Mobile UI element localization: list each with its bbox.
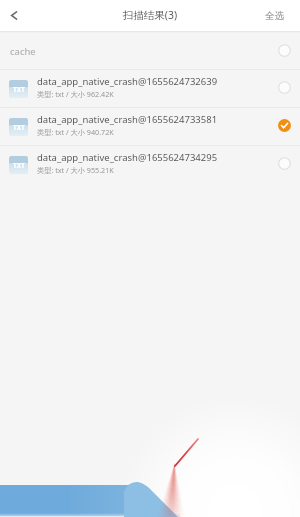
button[interactable]: cache — [0, 33, 300, 69]
staticText: 类型: txt / 大小 940.72K — [37, 127, 114, 137]
button[interactable]: Select file — [270, 150, 300, 180]
button[interactable]: Select cache — [270, 36, 300, 66]
staticText: 类型: txt / 大小 962.42K — [37, 89, 114, 99]
staticText: 类型: txt / 大小 955.21K — [37, 165, 114, 175]
staticText: cache — [10, 45, 36, 58]
button[interactable]: 全选 — [253, 0, 300, 31]
staticText: data_app_native_crash@1655624734295 — [37, 151, 218, 164]
button[interactable]: Select file — [270, 112, 300, 142]
button[interactable]: TXT — [0, 70, 300, 107]
button[interactable]: TXT — [0, 146, 300, 183]
staticText: data_app_native_crash@1655624733581 — [37, 113, 218, 126]
staticText: TXT — [13, 123, 25, 132]
button[interactable]: Select file — [270, 74, 300, 104]
button[interactable]: TXT — [0, 108, 300, 145]
staticText: data_app_native_crash@1655624732639 — [37, 75, 218, 88]
staticText: TXT — [13, 85, 25, 94]
staticText: 全选 — [265, 10, 284, 22]
staticText: TXT — [13, 161, 25, 170]
staticText: 扫描结果(3) — [0, 8, 300, 22]
button[interactable]: Back — [0, 0, 28, 31]
